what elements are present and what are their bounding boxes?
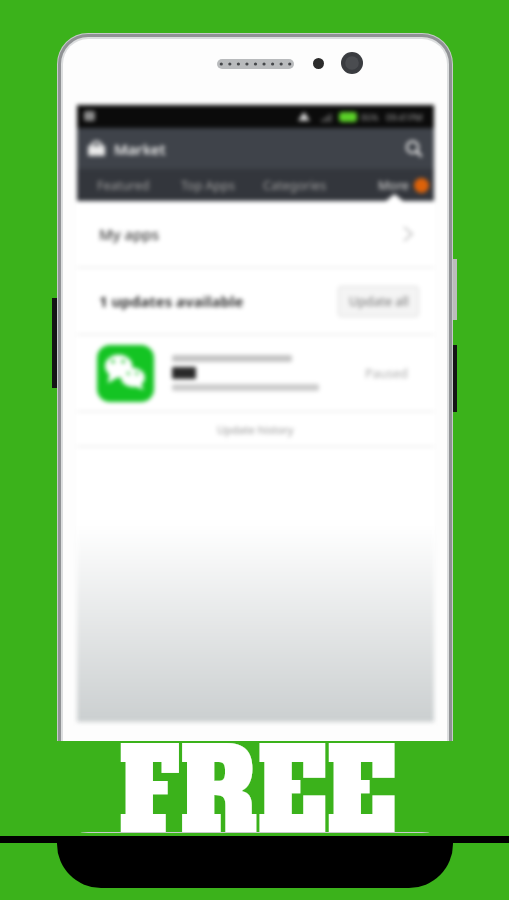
staticText: 86% [361,111,379,123]
button[interactable]: Search [393,128,434,169]
button[interactable]: Market [77,128,434,169]
button[interactable]: Categories [263,177,327,194]
staticText: 1 updates available [99,291,244,311]
staticText: Paused [365,365,409,382]
button[interactable]: Update history [77,412,434,446]
staticText: Featured [97,177,150,194]
staticText: Categories [263,177,327,194]
button[interactable]: My apps [77,201,434,267]
button[interactable]: Top Apps [181,177,235,194]
staticText: Update history [217,422,294,437]
staticText: More [378,177,409,194]
staticText: Top Apps [181,177,235,194]
button[interactable]: More [378,177,434,194]
staticText: My apps [99,224,160,244]
button[interactable]: Update all [338,286,419,317]
button[interactable]: Paused [77,335,434,411]
staticText: 09:41PM [386,111,423,123]
button[interactable]: Featured [97,177,150,194]
staticText: Update all [349,293,409,310]
staticText: FREE [119,741,396,832]
staticText: Market [114,139,166,159]
